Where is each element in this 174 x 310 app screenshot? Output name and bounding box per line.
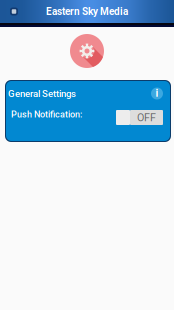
staticText: General Settings: [8, 88, 76, 99]
button[interactable]: Push Notification, off: [116, 110, 163, 125]
staticText: OFF: [137, 111, 156, 124]
button[interactable]: App icon: [6, 0, 22, 23]
staticText: i: [155, 87, 158, 99]
staticText: Eastern Sky Media: [46, 6, 128, 17]
button[interactable]: About General Settings: [148, 84, 166, 102]
staticText: Push Notification:: [11, 109, 82, 120]
